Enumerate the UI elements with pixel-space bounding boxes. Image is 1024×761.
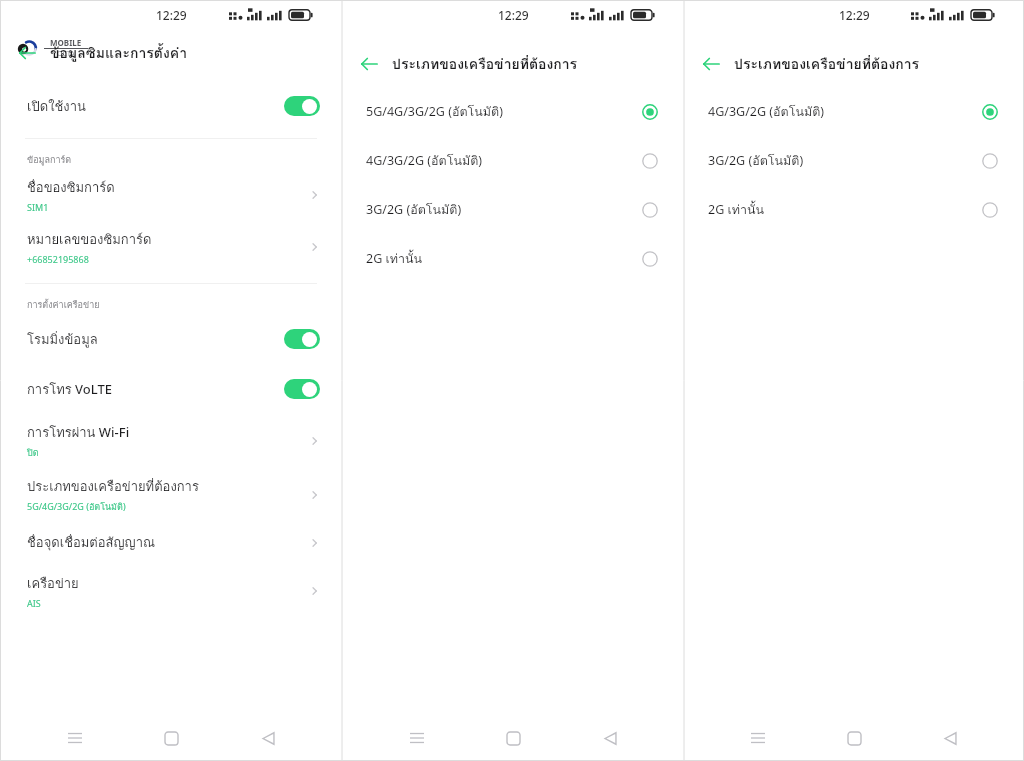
staticText: ปิด: [27, 446, 39, 460]
button[interactable]: ประเภทของเครือข่ายที่ต้องการ: [0, 476, 342, 514]
button[interactable]: 4G/3G/2G (อัตโนมัติ): [684, 100, 1024, 124]
staticText: 12:29: [498, 7, 529, 23]
button[interactable]: Home: [832, 716, 876, 760]
button[interactable]: 5G/4G/3G/2G (อัตโนมัติ): [342, 100, 684, 124]
button[interactable]: 2G เท่านั้น: [342, 247, 684, 271]
staticText: 12:29: [839, 7, 870, 23]
staticText: 2G เท่านั้น: [366, 249, 423, 269]
staticText: ข้อมูลการ์ด: [27, 153, 72, 167]
staticText: การโทรผ่าน Wi-Fi: [27, 422, 130, 443]
staticText: 3G/2G (อัตโนมัติ): [708, 151, 804, 171]
staticText: 4G/3G/2G (อัตโนมัติ): [366, 151, 483, 171]
button[interactable]: 4G/3G/2G (อัตโนมัติ): [342, 149, 684, 173]
button[interactable]: 2G เท่านั้น: [684, 198, 1024, 222]
button[interactable]: Home: [149, 716, 193, 760]
button[interactable]: ชื่อของซิมการ์ด: [0, 177, 342, 213]
button[interactable]: Back: [14, 40, 40, 66]
button[interactable]: โรมมิ่งข้อมูล: [0, 324, 342, 354]
staticText: การตั้งค่าเครือข่าย: [27, 298, 100, 312]
staticText: เปิดใช้งาน: [27, 96, 86, 117]
button[interactable]: ชื่อจุดเชื่อมต่อสัญญาณ: [0, 532, 342, 553]
staticText: 12:29: [156, 7, 187, 23]
button[interactable]: การโทรผ่าน Wi-Fi: [0, 422, 342, 460]
button[interactable]: การโทร VoLTE: [0, 374, 342, 404]
button[interactable]: Back: [928, 716, 972, 760]
staticText: โรมมิ่งข้อมูล: [27, 329, 98, 350]
staticText: ชื่อของซิมการ์ด: [27, 177, 115, 198]
staticText: ประเภทของเครือข่ายที่ต้องการ: [734, 53, 920, 75]
staticText: SIM1: [27, 201, 49, 213]
staticText: ชื่อจุดเชื่อมต่อสัญญาณ: [27, 532, 156, 553]
button[interactable]: Back: [246, 716, 290, 760]
staticText: 2G เท่านั้น: [708, 200, 765, 220]
button[interactable]: Back: [698, 51, 724, 77]
staticText: +66852195868: [27, 253, 89, 265]
button[interactable]: เครือข่าย: [0, 573, 342, 609]
button[interactable]: Home: [491, 716, 535, 760]
staticText: ข้อมูลซิมและการตั้งค่า: [50, 42, 187, 64]
button[interactable]: Recents: [736, 716, 780, 760]
staticText: การโทร VoLTE: [27, 379, 112, 400]
button[interactable]: 3G/2G (อัตโนมัติ): [684, 149, 1024, 173]
button[interactable]: 3G/2G (อัตโนมัติ): [342, 198, 684, 222]
staticText: ประเภทของเครือข่ายที่ต้องการ: [392, 53, 578, 75]
button[interactable]: Back: [588, 716, 632, 760]
button[interactable]: Toggle on: [284, 329, 320, 349]
staticText: 5G/4G/3G/2G (อัตโนมัติ): [27, 500, 126, 514]
staticText: 5G/4G/3G/2G (อัตโนมัติ): [366, 102, 503, 122]
button[interactable]: Recents: [395, 716, 439, 760]
staticText: 4G/3G/2G (อัตโนมัติ): [708, 102, 825, 122]
staticText: หมายเลขของซิมการ์ด: [27, 229, 152, 250]
staticText: 3G/2G (อัตโนมัติ): [366, 200, 462, 220]
staticText: เครือข่าย: [27, 573, 79, 594]
staticText: MOBILE: [50, 37, 82, 48]
button[interactable]: เปิดใช้งาน: [0, 86, 342, 126]
staticText: AIS: [27, 597, 41, 609]
button[interactable]: Toggle on: [284, 96, 320, 116]
button[interactable]: หมายเลขของซิมการ์ด: [0, 229, 342, 265]
button[interactable]: Recents: [53, 716, 97, 760]
staticText: ประเภทของเครือข่ายที่ต้องการ: [27, 476, 199, 497]
button[interactable]: Toggle on: [284, 379, 320, 399]
staticText: OCTA: [57, 49, 75, 59]
button[interactable]: Back: [356, 51, 382, 77]
